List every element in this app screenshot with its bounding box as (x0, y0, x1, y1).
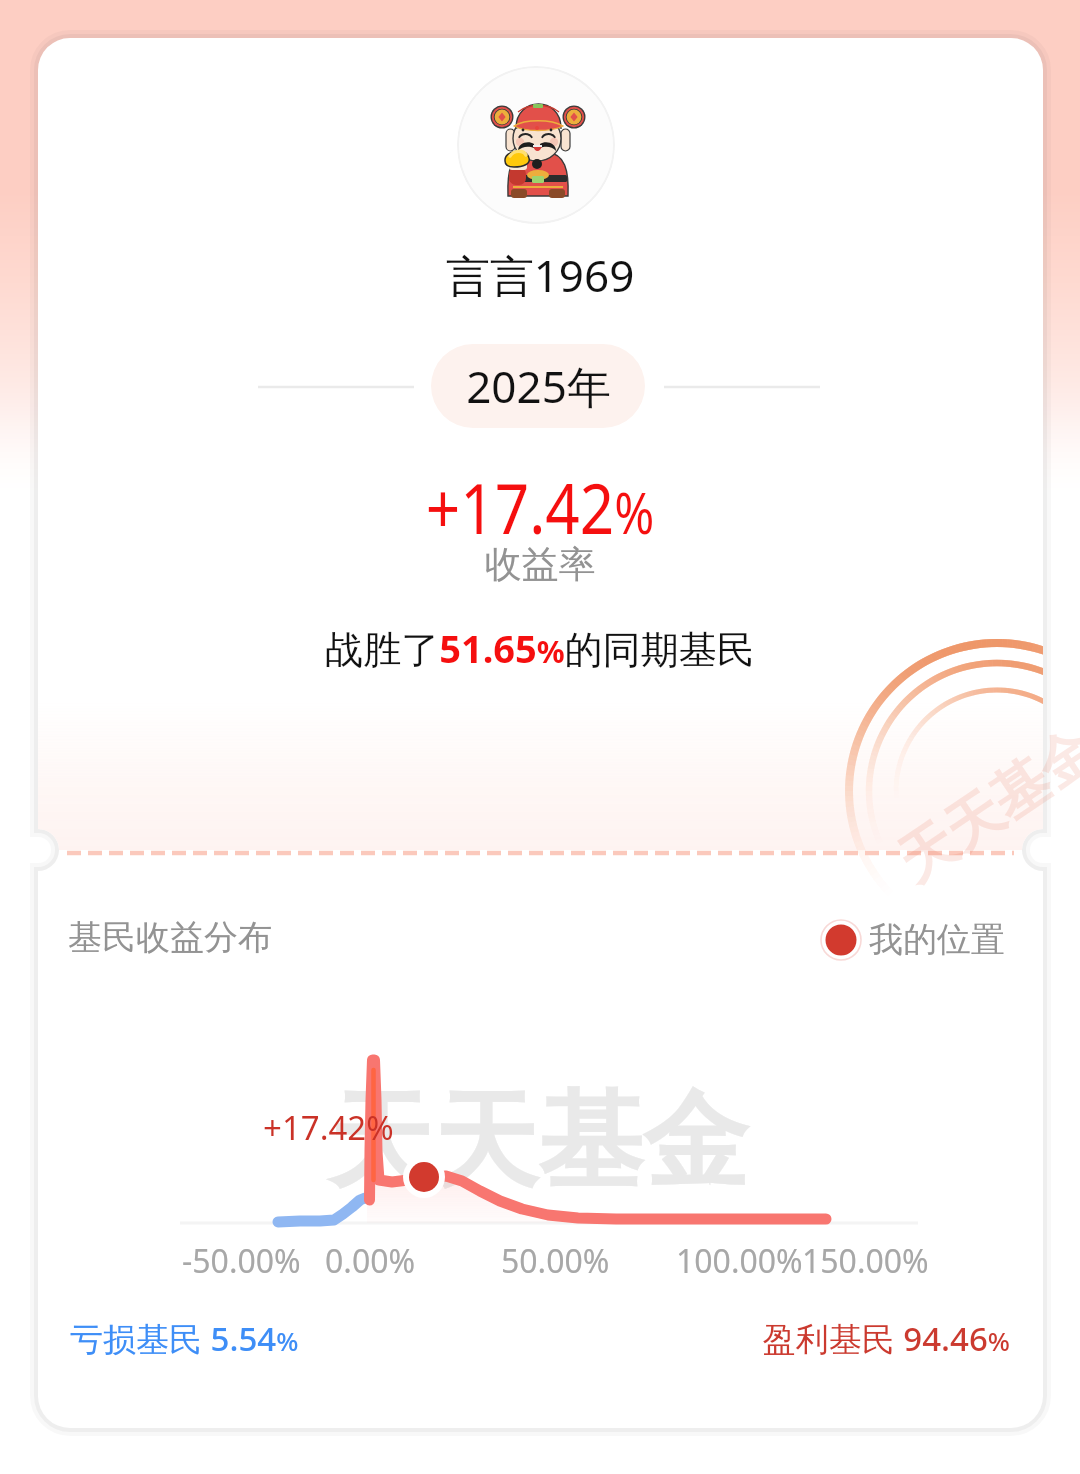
staticText: 天天基金 (328, 1076, 748, 1208)
staticText: 收益率 (0, 541, 1080, 588)
staticText: 盈利基民 94.46% (0, 1316, 1010, 1361)
staticText: 我的位置 (869, 918, 1005, 961)
button[interactable]: 盈利基民 94.46% (0, 1316, 1010, 1361)
button[interactable]: 基民收益分布 (68, 916, 272, 959)
staticText: 战胜了51.65%的同期基民 (0, 622, 1080, 674)
staticText: 基民收益分布 (68, 916, 272, 959)
staticText: 天天基金 (884, 713, 1080, 897)
button[interactable]: 我的位置 (818, 914, 1008, 962)
button[interactable]: User avatar (457, 66, 615, 224)
staticText: +17.42% (76, 459, 1004, 554)
staticText: -50.00% (182, 1239, 301, 1283)
button[interactable]: 亏损基民 5.54% (70, 1316, 299, 1361)
staticText: 100.00% (676, 1239, 803, 1283)
staticText: 150.00% (802, 1239, 929, 1283)
button[interactable]: 2025年 (431, 344, 645, 428)
staticText: 0.00% (325, 1239, 416, 1283)
staticText: +17.42% (263, 1105, 394, 1150)
staticText: 言言1969 (0, 245, 1080, 305)
staticText: 50.00% (501, 1239, 610, 1283)
staticText: 亏损基民 5.54% (70, 1316, 299, 1361)
staticText: 2025年 (466, 356, 611, 416)
